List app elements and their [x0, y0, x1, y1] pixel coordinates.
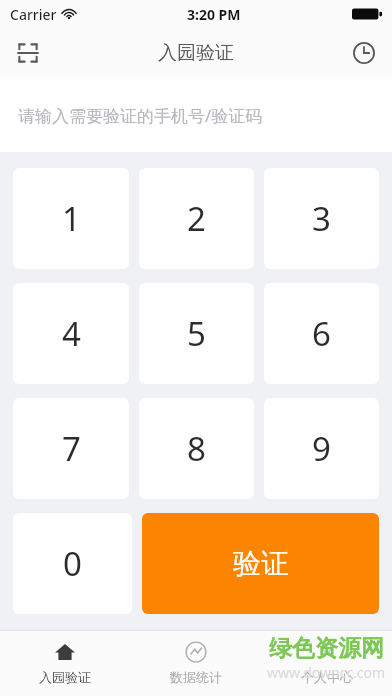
- staticText: www.downcc.com: [267, 663, 386, 682]
- button[interactable]: 6: [264, 283, 379, 384]
- button[interactable]: History: [344, 33, 384, 73]
- button[interactable]: 验证: [142, 513, 379, 614]
- button[interactable]: Scan QR code: [8, 33, 48, 73]
- button[interactable]: 8: [139, 398, 254, 499]
- button[interactable]: 4: [13, 283, 129, 384]
- button[interactable]: 7: [13, 398, 129, 499]
- staticText: 入园验证: [158, 41, 234, 65]
- staticText: 请输入需要验证的手机号/验证码: [18, 104, 263, 127]
- staticText: 3:20 PM: [187, 5, 241, 24]
- staticText: 3: [312, 196, 331, 241]
- staticText: 9: [312, 426, 331, 471]
- staticText: 2: [187, 196, 206, 241]
- staticText: Carrier: [10, 5, 57, 24]
- button[interactable]: 1: [13, 168, 129, 269]
- staticText: 入园验证: [39, 669, 91, 685]
- button[interactable]: 2: [139, 168, 254, 269]
- button[interactable]: 个人中心: [261, 631, 392, 696]
- staticText: 绿色资源网: [269, 634, 384, 663]
- staticText: 0: [63, 541, 82, 586]
- staticText: 8: [187, 426, 206, 471]
- button[interactable]: 5: [139, 283, 254, 384]
- button[interactable]: 3: [264, 168, 379, 269]
- staticText: 7: [62, 426, 81, 471]
- button[interactable]: 数据统计: [130, 631, 261, 696]
- staticText: 5: [187, 311, 206, 356]
- button[interactable]: 0: [13, 513, 132, 614]
- button[interactable]: 请输入需要验证的手机号/验证码: [0, 78, 392, 152]
- staticText: 6: [312, 311, 331, 356]
- staticText: 4: [62, 311, 81, 356]
- staticText: 验证: [233, 546, 289, 581]
- button[interactable]: 9: [264, 398, 379, 499]
- staticText: 数据统计: [170, 669, 222, 685]
- staticText: 1: [62, 196, 81, 241]
- button[interactable]: 入园验证: [0, 631, 130, 696]
- staticText: 个人中心: [301, 669, 353, 685]
